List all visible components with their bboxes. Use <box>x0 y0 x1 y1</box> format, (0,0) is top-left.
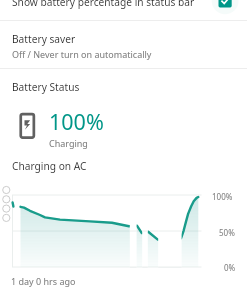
other: Battery charging <box>18 111 37 141</box>
staticText: Charging <box>49 137 88 149</box>
staticText: 50% <box>219 227 235 238</box>
button[interactable]: Show battery percentage in status bar <box>0 0 247 20</box>
staticText: 100% <box>49 107 104 136</box>
staticText: Show battery percentage in status bar <box>12 0 195 9</box>
staticText: Charging on AC <box>12 159 87 173</box>
staticText: Battery saver <box>12 32 76 46</box>
staticText: 100% <box>212 191 233 202</box>
staticText: 1 day 0 hrs ago <box>11 275 76 287</box>
staticText: Off / Never turn on automatically <box>12 48 152 60</box>
staticText: Battery Status <box>12 80 80 94</box>
button[interactable]: Battery saver <box>0 21 247 68</box>
staticText: 0% <box>224 262 236 273</box>
